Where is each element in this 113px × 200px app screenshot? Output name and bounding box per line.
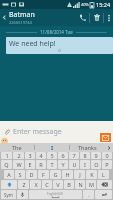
staticText: S <box>18 171 22 178</box>
staticText: X <box>34 181 38 188</box>
staticText: G <box>53 171 58 178</box>
staticText: Y <box>61 161 65 168</box>
staticText: 0 <box>105 152 109 159</box>
staticText: 8 <box>83 152 87 159</box>
staticText: J <box>79 171 81 178</box>
button[interactable]: H <box>62 170 73 179</box>
staticText: 9 <box>94 152 98 159</box>
button[interactable]: 8 <box>80 152 90 159</box>
button[interactable]: Y <box>58 160 68 169</box>
staticText: T <box>50 161 54 168</box>
button[interactable]: 1 <box>1 152 12 159</box>
button[interactable]: Sym <box>1 190 16 199</box>
button[interactable]: More suggestions <box>104 143 113 152</box>
button[interactable]: U <box>69 160 79 169</box>
staticText: B <box>67 181 71 188</box>
staticText: I <box>84 161 86 168</box>
button[interactable]: 0 <box>102 152 112 159</box>
staticText: 40% <box>81 2 89 7</box>
button[interactable]: The <box>0 143 34 152</box>
button[interactable]: Delete <box>90 9 103 26</box>
staticText: 5 <box>50 152 54 159</box>
button[interactable]: P <box>102 160 112 169</box>
button[interactable]: B <box>64 180 74 189</box>
button[interactable]: 2 <box>13 152 24 159</box>
staticText: . <box>88 191 90 198</box>
staticText: 2 <box>17 152 21 159</box>
button[interactable]: Shift <box>1 180 17 189</box>
button[interactable]: Send <box>100 133 111 142</box>
button[interactable]: We need help! <box>6 37 113 54</box>
staticText: K <box>90 171 94 178</box>
button[interactable]: N <box>75 180 85 189</box>
staticText: 1 <box>5 152 9 159</box>
button[interactable]: C <box>42 180 52 189</box>
staticText: Enter message <box>13 127 62 137</box>
staticText: D <box>29 171 34 178</box>
button[interactable]: I <box>80 160 90 169</box>
staticText: 2266619744 <box>9 20 32 25</box>
staticText: I <box>51 144 54 151</box>
button[interactable]: V <box>53 180 63 189</box>
button[interactable]: J <box>74 170 85 179</box>
staticText: M <box>89 181 94 188</box>
button[interactable]: F <box>38 170 49 179</box>
staticText: E <box>28 161 32 168</box>
staticText: Sym <box>4 192 13 198</box>
staticText: C <box>45 181 49 188</box>
staticText: U <box>72 161 77 168</box>
staticText: 6 <box>61 152 65 159</box>
staticText: 4 <box>39 152 43 159</box>
staticText: 7 <box>72 152 76 159</box>
button[interactable]: R <box>36 160 46 169</box>
staticText: 11/08/2014 Tue <box>40 29 73 35</box>
button[interactable]: 4 <box>36 152 46 159</box>
staticText: N <box>78 181 83 188</box>
button[interactable]: Attach <box>2 127 12 137</box>
button[interactable]: 7 <box>69 152 79 159</box>
button[interactable]: A <box>4 170 14 179</box>
button[interactable]: S <box>15 170 25 179</box>
button[interactable]: Backspace <box>97 180 112 189</box>
button[interactable]: E <box>25 160 35 169</box>
button[interactable]: Z <box>18 180 29 189</box>
button[interactable]: 6 <box>58 152 68 159</box>
button[interactable]: T <box>47 160 57 169</box>
button[interactable]: X <box>30 180 41 189</box>
staticText: Thanks <box>78 144 97 151</box>
staticText: Q <box>4 161 9 168</box>
button[interactable]: M <box>86 180 96 189</box>
button[interactable]: Back <box>0 9 9 26</box>
button[interactable]: Call <box>76 9 89 26</box>
button[interactable]: Voice input <box>17 190 28 199</box>
button[interactable]: W <box>13 160 24 169</box>
button[interactable]: I <box>35 143 69 152</box>
button[interactable]: Enter <box>95 190 112 199</box>
staticText: 15:24 <box>96 1 111 8</box>
staticText: R <box>39 161 43 168</box>
button[interactable]: L <box>98 170 109 179</box>
button[interactable]: G <box>50 170 61 179</box>
staticText: The <box>12 144 22 151</box>
staticText: A <box>7 171 11 178</box>
button[interactable]: . <box>83 190 94 199</box>
staticText: We need help! <box>9 39 56 49</box>
button[interactable]: 9 <box>91 152 101 159</box>
staticText: W <box>16 161 22 168</box>
button[interactable]: D <box>26 170 37 179</box>
staticText: English(UK) <box>47 192 64 196</box>
staticText: H <box>65 171 70 178</box>
button[interactable]: Q <box>1 160 12 169</box>
staticText: Z <box>22 181 26 188</box>
staticText: 3 <box>28 152 32 159</box>
staticText: L <box>102 171 105 178</box>
button[interactable]: O <box>91 160 101 169</box>
staticText: O <box>94 161 99 168</box>
button[interactable]: Thanks <box>70 143 104 152</box>
button[interactable]: Space <box>29 190 82 199</box>
staticText: V <box>56 181 60 188</box>
button[interactable]: 5 <box>47 152 57 159</box>
button[interactable]: K <box>86 170 97 179</box>
button[interactable]: 3 <box>25 152 35 159</box>
button[interactable]: More options <box>104 9 113 26</box>
